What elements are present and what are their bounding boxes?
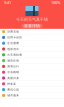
button[interactable]: 查看详情	[21, 24, 42, 28]
button[interactable]: 拼多多	[0, 81, 64, 87]
staticText: 拼多多	[7, 82, 16, 85]
button[interactable]: 生活缴费	[0, 40, 64, 46]
button[interactable]: 话费充值	[0, 29, 64, 35]
staticText: 生活缴费	[7, 42, 19, 45]
button[interactable]: 美团外卖	[0, 75, 64, 81]
staticText: 今天的天气真不错	[16, 17, 48, 22]
staticText: 查看详情	[24, 23, 40, 28]
staticText: 话费充值	[7, 30, 19, 33]
button[interactable]: 京东购物	[0, 69, 64, 75]
staticText: 美团外卖	[7, 76, 19, 80]
staticText: 100%	[51, 0, 60, 5]
button[interactable]: 腾讯公益	[0, 87, 64, 93]
staticText: 9:41	[4, 0, 11, 5]
button[interactable]: 电影演出	[0, 46, 64, 52]
button[interactable]: 城市服务	[0, 93, 64, 98]
button[interactable]: 酒店住宿	[0, 58, 64, 64]
staticText: 电影演出	[7, 47, 19, 51]
staticText: 信用卡还款	[7, 36, 22, 39]
button[interactable]: 信用卡还款	[0, 35, 64, 40]
button[interactable]: 滴滴出行	[0, 64, 64, 69]
staticText: 城市服务	[7, 94, 19, 97]
staticText: 滴滴出行	[7, 65, 19, 68]
button[interactable]: 火车票机票	[0, 52, 64, 58]
staticText: 腾讯公益	[7, 88, 19, 91]
staticText: 酒店住宿	[7, 59, 19, 62]
staticText: 火车票机票	[7, 53, 22, 56]
staticText: 京东购物	[7, 71, 19, 74]
